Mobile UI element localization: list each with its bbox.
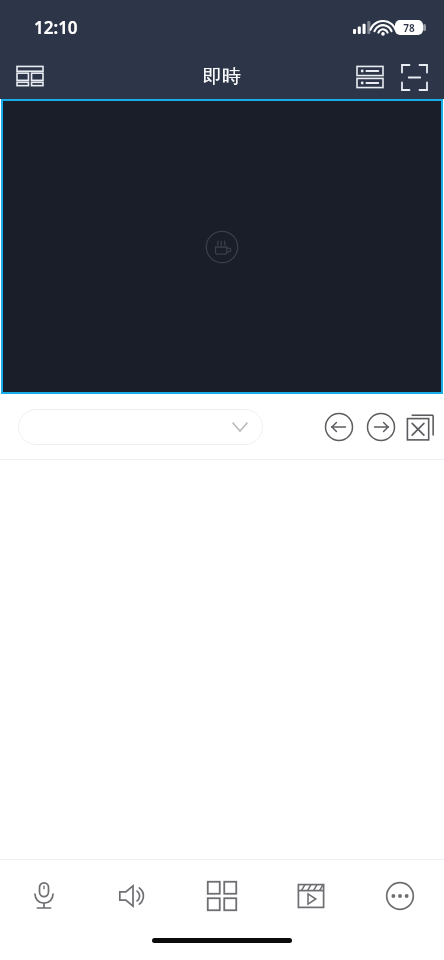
button[interactable]: List view: [348, 55, 392, 99]
button[interactable]: Close all: [402, 406, 438, 448]
button[interactable]: Forward: [360, 406, 402, 448]
staticText: 即時: [203, 65, 241, 89]
button[interactable]: Layout: [8, 55, 52, 99]
button[interactable]: Select channel: [18, 409, 263, 445]
staticText: 12:10: [34, 16, 78, 39]
button[interactable]: Microphone: [14, 866, 74, 926]
staticText: 78: [403, 21, 415, 35]
button[interactable]: Scan: [392, 55, 436, 99]
button[interactable]: Recordings: [281, 866, 341, 926]
button[interactable]: More: [370, 866, 430, 926]
button[interactable]: Grid: [192, 866, 252, 926]
button[interactable]: Video stream: [1, 99, 443, 394]
button[interactable]: Back: [318, 406, 360, 448]
button[interactable]: Speaker: [103, 866, 163, 926]
